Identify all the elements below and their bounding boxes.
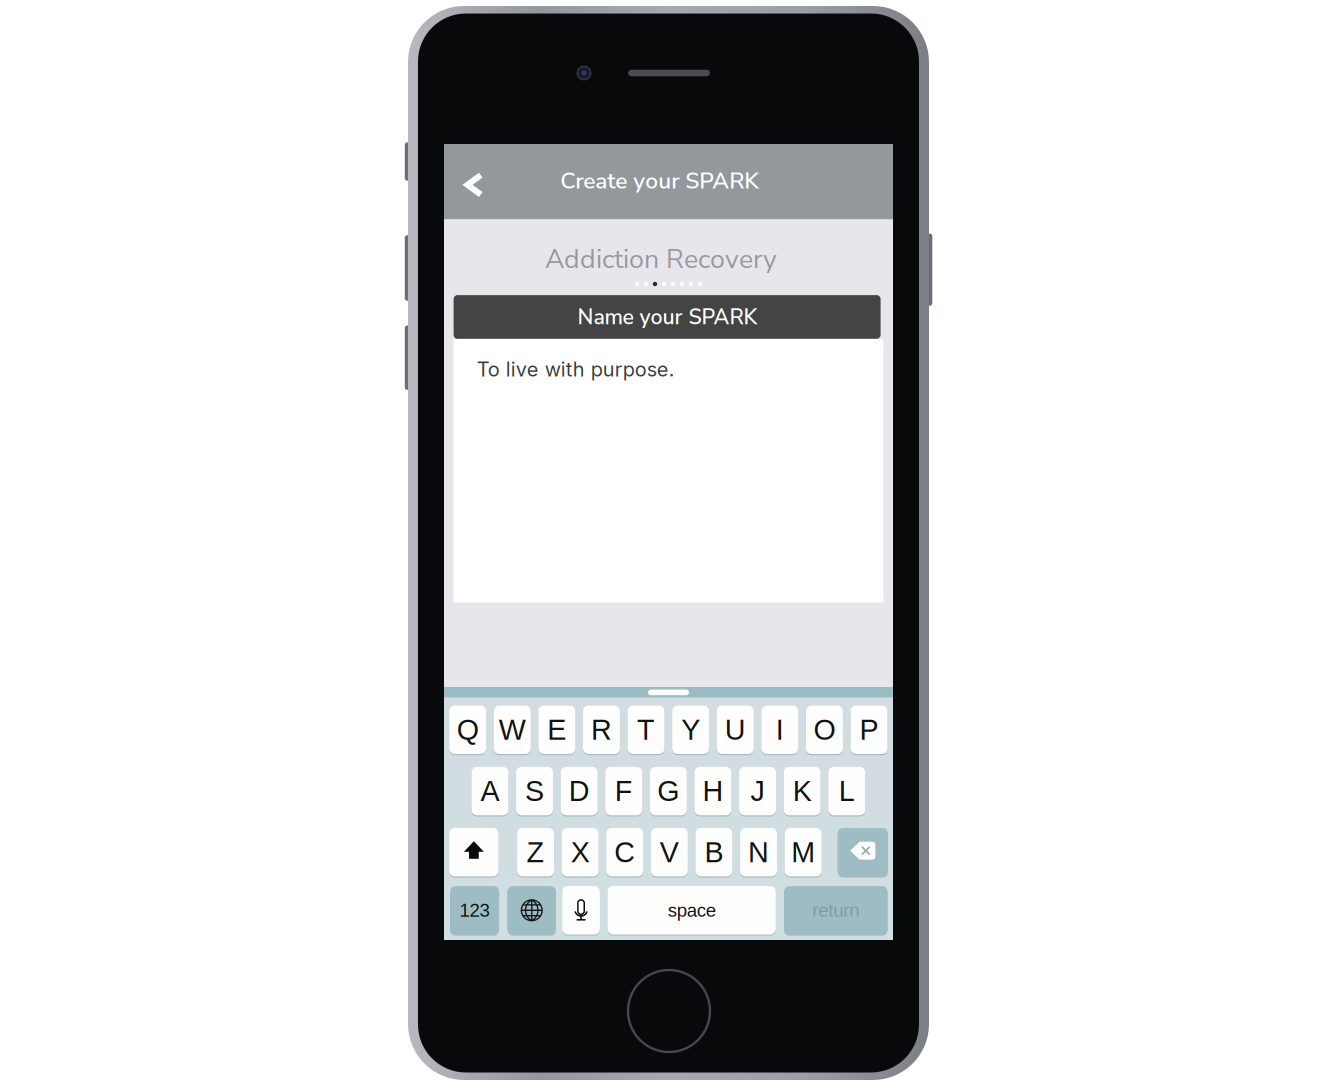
button[interactable]: H	[694, 767, 731, 815]
button[interactable]: E	[538, 706, 575, 754]
button[interactable]: 123	[450, 886, 499, 934]
button[interactable]: F	[605, 767, 642, 815]
button[interactable]: Delete	[838, 828, 888, 876]
button[interactable]: L	[828, 767, 865, 815]
staticText: P	[860, 714, 879, 746]
button[interactable]: X	[562, 828, 599, 876]
button[interactable]: Z	[517, 828, 554, 876]
staticText: Addiction Recovery	[545, 241, 777, 277]
staticText: H	[702, 775, 723, 807]
button[interactable]: T	[628, 706, 664, 754]
staticText: 123	[460, 900, 490, 921]
button[interactable]: V	[651, 828, 688, 876]
staticText: L	[839, 775, 855, 807]
button[interactable]: R	[583, 706, 620, 754]
staticText: F	[615, 775, 633, 807]
button[interactable]: N	[740, 828, 777, 876]
staticText: C	[614, 836, 635, 868]
button[interactable]: J	[739, 767, 776, 815]
staticText: R	[591, 714, 612, 746]
staticText: U	[725, 714, 746, 746]
staticText: I	[776, 714, 784, 746]
staticText: return	[812, 900, 859, 921]
button[interactable]: B	[695, 828, 732, 876]
button[interactable]: I	[761, 706, 798, 754]
staticText: Y	[681, 714, 700, 746]
button[interactable]: Shift	[449, 828, 498, 876]
staticText: A	[480, 775, 499, 807]
staticText: J	[751, 775, 765, 807]
button[interactable]: Dictation	[562, 886, 600, 934]
button[interactable]: Next keyboard	[507, 886, 556, 934]
button[interactable]: Y	[672, 706, 709, 754]
button[interactable]: space	[607, 886, 776, 934]
staticText: V	[660, 836, 679, 868]
staticText: K	[793, 775, 812, 807]
button[interactable]: A	[471, 767, 508, 815]
staticText: Z	[527, 836, 545, 868]
button[interactable]: Q	[449, 706, 486, 754]
staticText: O	[813, 714, 835, 746]
staticText: Create your SPARK	[560, 165, 759, 196]
button[interactable]: Back	[447, 159, 501, 213]
staticText: E	[547, 714, 566, 746]
staticText: space	[668, 900, 716, 921]
staticText: S	[525, 775, 544, 807]
staticText: Name your SPARK	[577, 303, 757, 332]
staticText: M	[791, 836, 815, 868]
button[interactable]: G	[650, 767, 687, 815]
button[interactable]: return	[784, 886, 887, 934]
staticText: N	[748, 836, 769, 868]
staticText: To live with purpose.	[477, 357, 675, 381]
button[interactable]: D	[561, 767, 598, 815]
staticText: Q	[457, 714, 479, 746]
staticText: X	[571, 836, 590, 868]
button[interactable]: C	[606, 828, 643, 876]
button[interactable]: O	[806, 706, 843, 754]
staticText: T	[637, 714, 655, 746]
staticText: W	[499, 714, 526, 746]
button[interactable]: U	[717, 706, 754, 754]
staticText: D	[569, 775, 590, 807]
staticText: G	[657, 775, 679, 807]
staticText: B	[704, 836, 723, 868]
button[interactable]: K	[784, 767, 821, 815]
button[interactable]: S	[516, 767, 553, 815]
button[interactable]: P	[851, 706, 887, 754]
button[interactable]: M	[785, 828, 822, 876]
button[interactable]: W	[494, 706, 531, 754]
